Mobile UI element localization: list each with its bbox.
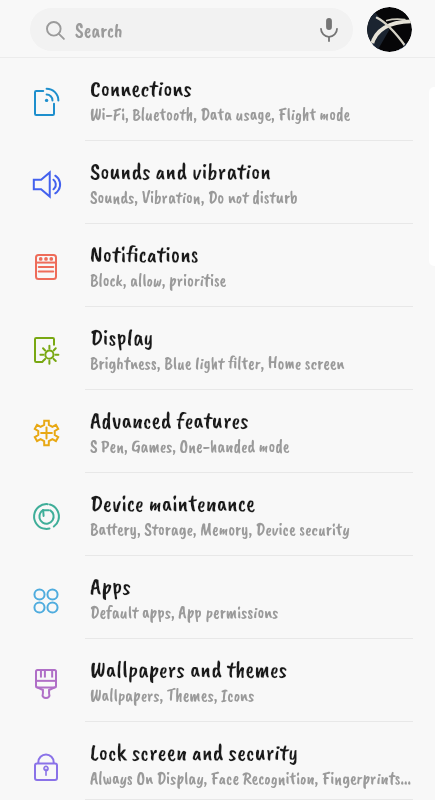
button[interactable]: Sounds and vibration bbox=[0, 141, 435, 224]
staticText: Always On Display, Face Recognition, Fin… bbox=[90, 767, 412, 789]
button[interactable]: Device maintenance bbox=[0, 473, 435, 556]
button[interactable]: Profile bbox=[367, 7, 412, 52]
staticText: Connections bbox=[90, 73, 192, 103]
button[interactable]: Connections bbox=[0, 58, 435, 141]
staticText: Sounds and vibration bbox=[90, 156, 271, 186]
staticText: Advanced features bbox=[90, 405, 249, 435]
staticText: Brightness, Blue light filter, Home scre… bbox=[90, 352, 345, 374]
button[interactable]: Apps bbox=[0, 556, 435, 639]
button[interactable]: Voice search bbox=[313, 14, 344, 45]
staticText: Display bbox=[90, 322, 154, 352]
staticText: Device maintenance bbox=[90, 488, 256, 518]
staticText: Lock screen and security bbox=[90, 737, 299, 767]
staticText: Wallpapers and themes bbox=[90, 654, 288, 684]
staticText: Battery, Storage, Memory, Device securit… bbox=[90, 518, 350, 540]
button[interactable]: Wallpapers and themes bbox=[0, 639, 435, 722]
staticText: S Pen, Games, One-handed mode bbox=[90, 435, 290, 457]
staticText: Default apps, App permissions bbox=[90, 601, 279, 623]
staticText: Notifications bbox=[90, 239, 199, 269]
staticText: Search bbox=[75, 18, 123, 43]
staticText: Sounds, Vibration, Do not disturb bbox=[90, 186, 298, 208]
button[interactable]: Display bbox=[0, 307, 435, 390]
staticText: Wi-Fi, Bluetooth, Data usage, Flight mod… bbox=[90, 103, 351, 125]
staticText: Block, allow, prioritise bbox=[90, 269, 227, 291]
button[interactable]: Search bbox=[30, 8, 353, 51]
button[interactable]: Lock screen and security bbox=[0, 722, 435, 800]
staticText: Apps bbox=[90, 571, 131, 601]
button[interactable]: Advanced features bbox=[0, 390, 435, 473]
button[interactable]: Notifications bbox=[0, 224, 435, 307]
staticText: Wallpapers, Themes, Icons bbox=[90, 684, 255, 706]
